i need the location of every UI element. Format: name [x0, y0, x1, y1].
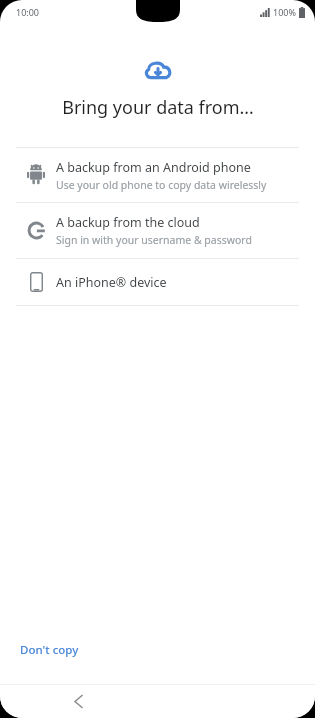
- button[interactable]: Don't copy: [8, 636, 91, 664]
- button[interactable]: An iPhone® device: [0, 259, 315, 305]
- button[interactable]: Back: [64, 687, 92, 715]
- staticText: Bring your data from…: [62, 95, 254, 120]
- staticText: Use your old phone to copy data wireless…: [56, 178, 267, 192]
- staticText: A backup from the cloud: [56, 214, 200, 231]
- staticText: A backup from an Android phone: [56, 159, 251, 176]
- staticText: Don't copy: [20, 642, 79, 658]
- staticText: Sign in with your username & password: [56, 233, 252, 247]
- button[interactable]: A backup from the cloud: [0, 203, 315, 258]
- staticText: An iPhone® device: [56, 274, 167, 291]
- staticText: 10:00: [16, 6, 40, 18]
- button[interactable]: A backup from an Android phone: [0, 148, 315, 202]
- staticText: 100%: [273, 6, 296, 18]
